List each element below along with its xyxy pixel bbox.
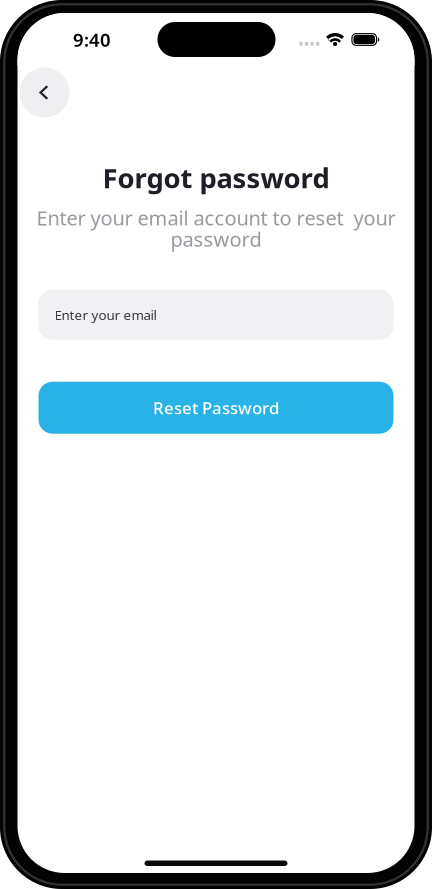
staticText: Enter your email account to reset your	[36, 204, 395, 231]
staticText: 9:40	[73, 27, 111, 52]
button[interactable]: Enter your email	[38, 290, 393, 340]
staticText: Forgot password	[102, 159, 329, 196]
staticText: Reset Password	[153, 396, 279, 419]
button[interactable]: Back	[19, 67, 69, 118]
staticText: password	[170, 225, 261, 253]
staticText: Enter your email	[54, 306, 156, 324]
button[interactable]: Reset Password	[38, 382, 393, 434]
